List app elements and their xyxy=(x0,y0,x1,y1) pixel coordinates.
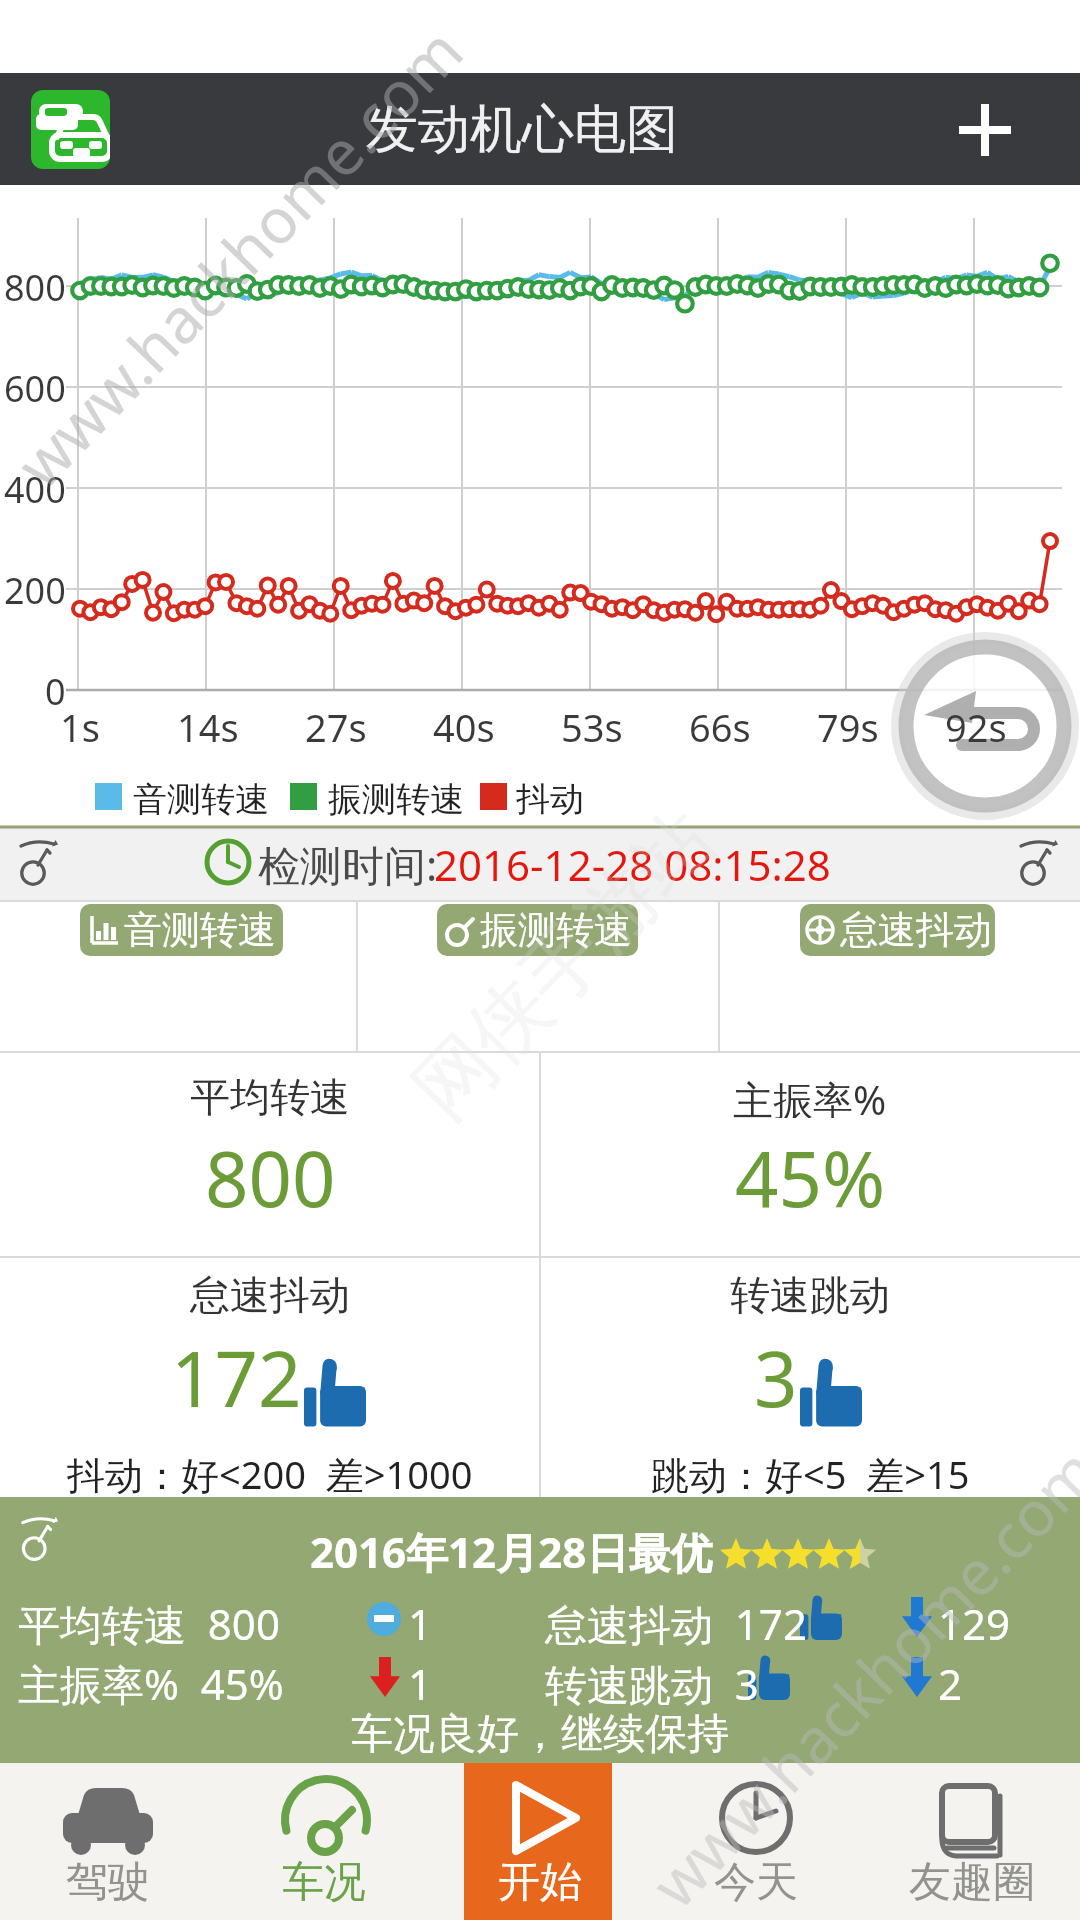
staticText: 800 xyxy=(205,1126,336,1222)
staticText: 音测转速 xyxy=(133,778,269,821)
staticText: 2016-12-28 08:15:28 xyxy=(434,836,831,893)
button[interactable]: 怠速抖动 xyxy=(800,904,995,956)
staticText: 3 xyxy=(754,1326,798,1430)
staticText: 怠速抖动 xyxy=(840,906,992,954)
button[interactable]: 音测转速 xyxy=(80,904,283,956)
button[interactable]: 振测转速 xyxy=(437,904,638,956)
staticText: 129 xyxy=(938,1595,1011,1652)
staticText: 主振率% 45% xyxy=(18,1655,284,1712)
staticText: 2 xyxy=(938,1655,963,1712)
staticText: 172 xyxy=(171,1326,302,1430)
button[interactable]: 主振率% xyxy=(540,1072,1080,1118)
staticText: 14s xyxy=(177,701,239,747)
staticText: 发动机心电图 xyxy=(366,97,678,163)
button[interactable]: 平均转速 xyxy=(0,1072,540,1118)
staticText: 400 xyxy=(4,465,66,507)
button[interactable] xyxy=(31,90,110,169)
staticText: 800 xyxy=(4,263,66,305)
staticText: 音测转速 xyxy=(124,906,276,954)
staticText: 网侠手游站 xyxy=(393,791,735,1139)
staticText: 92s xyxy=(945,701,1007,747)
staticText: 转速跳动 xyxy=(730,1270,890,1316)
button[interactable] xyxy=(216,1763,432,1920)
staticText: 检测时间: xyxy=(258,836,438,893)
button[interactable] xyxy=(0,1497,1080,1763)
staticText: 跳动：好<5 差>15 xyxy=(651,1448,970,1494)
button[interactable]: 转速跳动 xyxy=(540,1270,1080,1316)
button[interactable] xyxy=(648,1763,864,1920)
staticText: 转速跳动 3 xyxy=(545,1655,759,1712)
staticText: 600 xyxy=(4,364,66,406)
staticText: 2016年12月28日最优 xyxy=(310,1523,713,1580)
staticText: 45% xyxy=(735,1126,886,1222)
staticText: 今天 xyxy=(714,1856,798,1909)
staticText: 怠速抖动 172 xyxy=(545,1595,807,1652)
staticText: 抖动：好<200 差>1000 xyxy=(67,1448,473,1494)
staticText: 车况 xyxy=(282,1856,366,1909)
button[interactable] xyxy=(940,95,1030,165)
button[interactable] xyxy=(864,1763,1080,1920)
button[interactable] xyxy=(432,1763,648,1920)
staticText: 1 xyxy=(408,1655,433,1712)
button[interactable] xyxy=(0,1763,216,1920)
staticText: 1s xyxy=(60,701,100,747)
staticText: 开始 xyxy=(498,1856,582,1909)
staticText: 66s xyxy=(689,701,751,747)
staticText: www.hackhome.com xyxy=(632,1429,1080,1920)
staticText: 79s xyxy=(817,701,879,747)
staticText: 主振率% xyxy=(733,1072,887,1118)
staticText: 振测转速 xyxy=(480,906,632,954)
staticText: 53s xyxy=(561,701,623,747)
staticText: 驾驶 xyxy=(66,1856,150,1909)
staticText: 40s xyxy=(433,701,495,747)
staticText: 27s xyxy=(305,701,367,747)
staticText: 振测转速 xyxy=(328,778,464,821)
staticText: 抖动 xyxy=(516,778,584,821)
staticText: 平均转速 800 xyxy=(18,1595,280,1652)
button[interactable]: 怠速抖动 xyxy=(0,1270,540,1316)
staticText: 车况良好，继续保持 xyxy=(351,1708,729,1758)
staticText: 1 xyxy=(408,1595,433,1652)
staticText: 怠速抖动 xyxy=(190,1270,350,1316)
staticText: 0 xyxy=(45,667,66,709)
staticText: 200 xyxy=(4,566,66,608)
staticText: 友趣圈 xyxy=(909,1856,1035,1909)
staticText: 平均转速 xyxy=(190,1072,350,1118)
staticText: www.hackhome.com xyxy=(0,9,480,504)
